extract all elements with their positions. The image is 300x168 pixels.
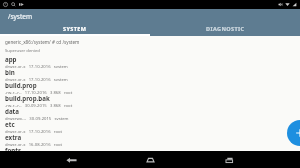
staticText: Superuser denied xyxy=(5,48,40,54)
button[interactable]: fonts xyxy=(0,146,300,151)
staticText: DIAGNOSTIC xyxy=(206,25,245,32)
staticText: generic_x86:/system/ # cd /system xyxy=(5,39,80,45)
staticText: drwxr-xr-x 17-10-2016 system xyxy=(5,77,68,81)
staticText: fonts xyxy=(5,146,22,151)
staticText: build.prop xyxy=(5,81,37,89)
staticText: drwxr-xr-x 17-10-2016 system xyxy=(5,64,68,68)
staticText: -rw-r--r-- 17-10-2016 3,868 root xyxy=(5,90,73,94)
staticText: build.prop.bak xyxy=(5,94,50,102)
button[interactable]: New folder xyxy=(287,120,300,146)
button[interactable]: bin xyxy=(0,68,300,81)
staticText: drwxrwx--- 30-09-2015 system xyxy=(5,116,69,120)
button[interactable]: app xyxy=(0,55,300,68)
button[interactable]: build.prop.bak xyxy=(0,94,300,107)
button[interactable]: build.prop xyxy=(0,81,300,94)
staticText: drwxr-xr-x 17-10-2016 root xyxy=(5,129,63,133)
button[interactable]: DIAGNOSTIC xyxy=(150,23,300,34)
staticText: SYSTEM xyxy=(63,25,87,32)
button[interactable]: generic_x86:/system/ # cd /system xyxy=(0,36,300,47)
button[interactable]: data xyxy=(0,107,300,120)
staticText: data xyxy=(5,107,20,115)
button[interactable]: Recent apps xyxy=(218,151,240,168)
button[interactable]: Home xyxy=(139,151,161,168)
button[interactable]: SYSTEM xyxy=(0,23,150,34)
staticText: -rw-r--r-- 30-09-2015 3,868 root xyxy=(5,103,73,107)
button[interactable]: Back xyxy=(60,151,82,168)
button[interactable]: etc xyxy=(0,120,300,133)
staticText: app xyxy=(5,55,17,63)
staticText: extra xyxy=(5,133,22,141)
staticText: /system xyxy=(8,12,33,21)
staticText: drwxr-xr-x 16-08-2016 root xyxy=(5,142,63,146)
staticText: bin xyxy=(5,68,15,76)
staticText: etc xyxy=(5,120,15,128)
button[interactable]: extra xyxy=(0,133,300,146)
